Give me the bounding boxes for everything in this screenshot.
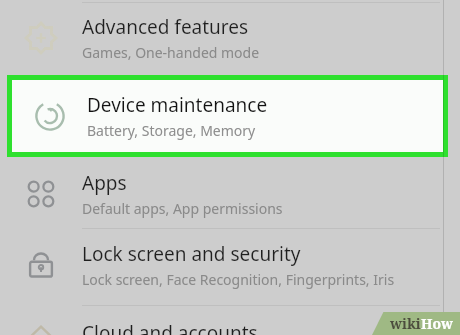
- button[interactable]: Cloud and accounts: [0, 306, 460, 335]
- staticText: Lock screen and security: [82, 241, 301, 267]
- staticText: How: [421, 314, 454, 333]
- staticText: Battery, Storage, Memory: [87, 121, 256, 140]
- staticText: Apps: [82, 170, 127, 196]
- staticText: Device maintenance: [87, 92, 268, 118]
- staticText: Advanced features: [82, 14, 249, 40]
- staticText: Cloud and accounts: [82, 320, 258, 335]
- button[interactable]: Device maintenance: [12, 80, 443, 152]
- staticText: Default apps, App permissions: [82, 199, 283, 218]
- button[interactable]: Apps: [0, 160, 460, 228]
- button[interactable]: Lock screen and security: [0, 229, 460, 301]
- button[interactable]: Advanced features: [0, 3, 460, 73]
- staticText: wiki: [390, 314, 421, 333]
- staticText: Games, One-handed mode: [82, 43, 260, 62]
- staticText: Lock screen, Face Recognition, Fingerpri…: [82, 270, 395, 289]
